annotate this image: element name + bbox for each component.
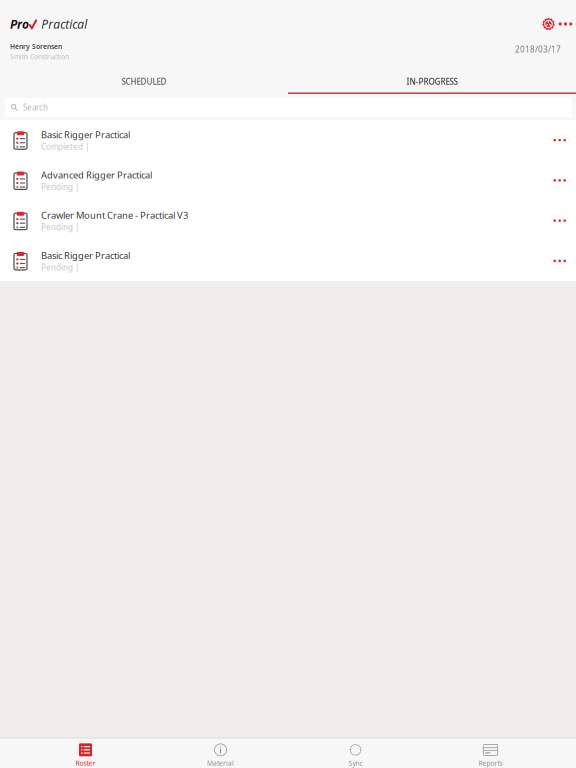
staticText: Pending |: [41, 181, 79, 192]
staticText: Henry Sorensen: [10, 42, 62, 51]
staticText: Smith Construction: [10, 52, 69, 61]
button[interactable]: Sync: [288, 738, 423, 768]
staticText: Pro: [10, 16, 29, 32]
button[interactable]: Advanced Rigger Practical: [0, 160, 576, 200]
staticText: Advanced Rigger Practical: [41, 169, 152, 181]
staticText: Pending |: [41, 262, 79, 273]
button[interactable]: Roster: [18, 738, 153, 768]
staticText: Practical: [41, 16, 87, 32]
staticText: Pending |: [41, 222, 79, 232]
button[interactable]: IN-PROGRESS: [288, 71, 576, 94]
staticText: Sync: [348, 759, 362, 768]
staticText: Basic Rigger Practical: [41, 128, 130, 141]
button[interactable]: More options: [557, 13, 574, 35]
button[interactable]: Reports: [423, 738, 558, 768]
staticText: Roster: [75, 759, 95, 768]
staticText: Search: [23, 102, 48, 113]
button[interactable]: Material: [153, 738, 288, 768]
staticText: Basic Rigger Practical: [41, 249, 130, 261]
button[interactable]: Basic Rigger Practical: [0, 241, 576, 281]
staticText: Completed |: [41, 141, 89, 152]
staticText: Material: [207, 759, 234, 768]
staticText: SCHEDULED: [121, 76, 166, 87]
button[interactable]: SCHEDULED: [0, 71, 288, 94]
button[interactable]: Basic Rigger Practical: [0, 120, 576, 160]
staticText: Crawler Mount Crane - Practical V3: [41, 209, 188, 221]
staticText: 2018/03/17: [515, 44, 561, 55]
staticText: Reports: [478, 759, 502, 768]
staticText: IN-PROGRESS: [406, 76, 457, 87]
button[interactable]: Settings: [540, 13, 557, 35]
button[interactable]: Crawler Mount Crane - Practical V3: [0, 200, 576, 241]
